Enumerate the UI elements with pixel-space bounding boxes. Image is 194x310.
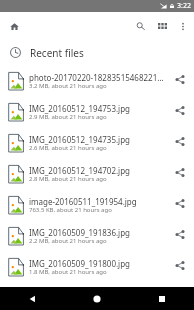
button[interactable]: Back (0, 287, 64, 310)
button[interactable]: Home (64, 287, 129, 310)
button[interactable]: Share (166, 95, 194, 126)
button[interactable]: Grid view (151, 14, 173, 36)
button[interactable]: IMG_20160512_194753.jpg (0, 95, 194, 126)
staticText: 763.5 KB, about 21 hours ago (29, 206, 112, 214)
button[interactable]: Share (166, 64, 194, 95)
staticText: Recent files (30, 46, 84, 60)
staticText: 2.6 MB, about 21 hours ago (29, 144, 107, 152)
staticText: IMG_20160512_194753.jpg (29, 103, 131, 114)
staticText: IMG_20160509_191836.jpg (29, 227, 131, 238)
button[interactable]: IMG_20160512_194702.jpg (0, 157, 194, 188)
button[interactable]: Share (166, 126, 194, 157)
button[interactable]: Share (166, 219, 194, 250)
button[interactable]: IMG_20160512_194735.jpg (0, 126, 194, 157)
button[interactable]: IMG_20160509_191800.jpg (0, 250, 194, 281)
button[interactable]: IMG_20160509_191836.jpg (0, 219, 194, 250)
button[interactable]: Home (2, 14, 26, 38)
staticText: photo-20170220-18283515468221534.jpg (29, 72, 166, 83)
staticText: IMG_20160512_194735.jpg (29, 134, 131, 145)
staticText: IMG_20160512_194702.jpg (29, 165, 131, 176)
button[interactable]: More options (173, 15, 193, 35)
staticText: image-20160511_191954.jpg (29, 196, 137, 207)
staticText: 3:22 (177, 1, 191, 11)
staticText: 1.8 MB, about 21 hours ago (29, 268, 107, 276)
staticText: 2.9 MB, about 21 hours ago (29, 113, 107, 121)
button[interactable]: Share (166, 250, 194, 281)
staticText: 2.8 MB, about 21 hours ago (29, 175, 107, 183)
button[interactable]: Search (129, 14, 151, 36)
staticText: 3.2 MB, about 21 hours ago (29, 82, 107, 90)
button[interactable]: Share (166, 157, 194, 188)
button[interactable]: photo-20170220-18283515468221534.jpg (0, 64, 194, 95)
staticText: 2.2 MB, about 21 hours ago (29, 237, 107, 245)
button[interactable]: Recent files (0, 37, 194, 64)
button[interactable]: Recents (129, 287, 194, 310)
button[interactable]: image-20160511_191954.jpg (0, 188, 194, 219)
button[interactable]: Share (166, 188, 194, 219)
staticText: IMG_20160509_191800.jpg (29, 258, 131, 269)
